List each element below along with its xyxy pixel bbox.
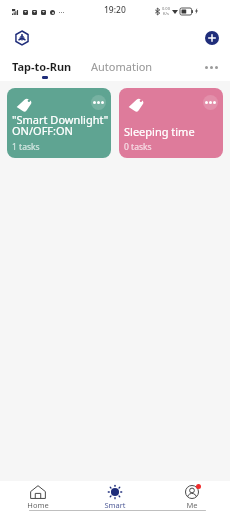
staticText: Me bbox=[186, 500, 198, 508]
button[interactable]: Home bbox=[0, 485, 76, 508]
staticText: K/s bbox=[163, 11, 169, 16]
button[interactable]: Scene options bbox=[119, 88, 223, 158]
button[interactable]: Scene options bbox=[203, 95, 218, 110]
button[interactable]: Add bbox=[205, 31, 219, 45]
staticText: 0 tasks bbox=[124, 141, 152, 153]
button[interactable]: App logo bbox=[11, 27, 33, 49]
staticText: 0.00 bbox=[162, 6, 170, 11]
button[interactable]: Automation bbox=[91, 59, 153, 74]
staticText: "Smart Downlight" ON/OFF:ON bbox=[12, 112, 109, 139]
staticText: 19:20 bbox=[104, 4, 126, 16]
button[interactable]: Smart bbox=[76, 485, 153, 508]
button[interactable]: Scene options bbox=[91, 95, 106, 110]
staticText: Sleeping time bbox=[124, 124, 195, 139]
button[interactable]: Me bbox=[153, 485, 230, 508]
staticText: Tap-to-Run bbox=[12, 59, 72, 74]
staticText: Smart bbox=[104, 500, 126, 508]
staticText: Home bbox=[27, 500, 49, 508]
button[interactable]: Scene options bbox=[7, 88, 111, 158]
button[interactable]: Tap-to-Run bbox=[8, 55, 74, 81]
button[interactable]: More options bbox=[205, 66, 218, 69]
staticText: 1 tasks bbox=[12, 141, 40, 153]
